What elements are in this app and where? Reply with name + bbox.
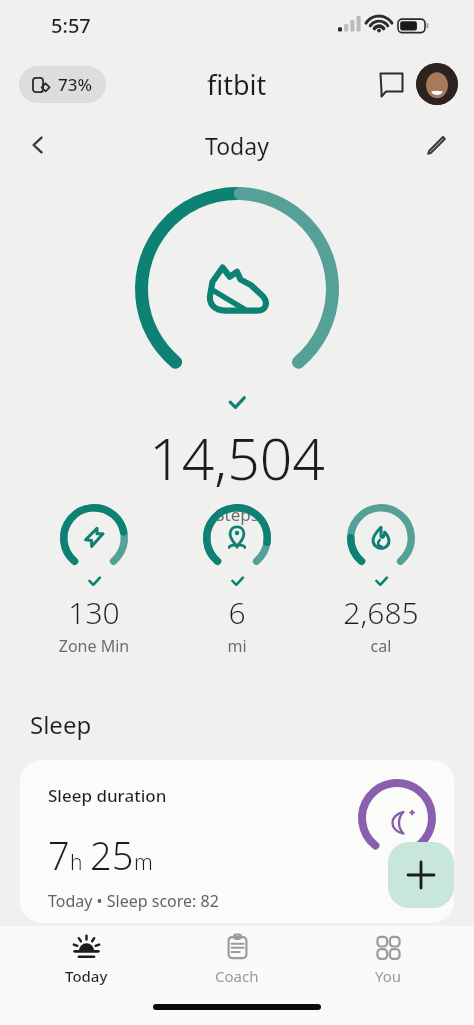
staticText: mi [173,635,301,657]
staticText: Coach [215,966,259,986]
button[interactable]: Today [21,926,151,992]
button[interactable]: Add [388,842,454,908]
staticText: Today [65,966,108,986]
staticText: 7 [48,829,70,881]
staticText: Sleep duration [48,784,167,807]
staticText: 6 [173,592,301,633]
button[interactable]: Messages [371,64,411,104]
button[interactable]: Back [16,123,60,167]
staticText: 5:57 [51,12,91,39]
staticText: Today • Sleep score: 82 [48,890,219,912]
staticText: Zone Min [30,635,158,657]
button[interactable]: Profile [416,63,458,105]
button[interactable]: Coach [172,926,302,992]
button[interactable]: Edit [414,123,458,167]
staticText: fitbit [207,66,267,103]
staticText: 2,685 [317,592,445,633]
staticText: 130 [30,592,158,633]
staticText: Today [205,130,269,161]
staticText: 25 [90,829,134,881]
staticText: 14,504 [0,419,474,497]
button[interactable]: You [323,926,453,992]
button[interactable]: 130 [30,502,158,657]
staticText: You [375,966,402,986]
button[interactable]: Sleep duration [20,760,454,923]
staticText: m [134,848,153,877]
button[interactable]: 6 [173,502,301,657]
button[interactable]: 2,685 [317,502,445,657]
staticText: h [70,848,83,877]
staticText: 73% [58,73,92,96]
staticText: Steps [0,503,474,526]
button[interactable]: Device battery 73 percent [19,66,106,103]
staticText: Sleep [30,708,92,741]
staticText: cal [317,635,445,657]
